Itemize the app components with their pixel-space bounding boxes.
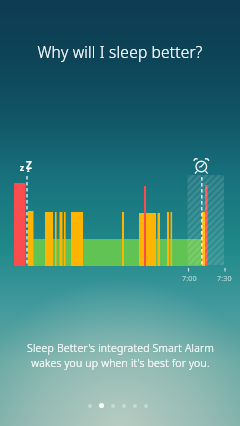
button[interactable] bbox=[88, 403, 148, 408]
staticText: 7:00 bbox=[182, 273, 197, 283]
staticText: 7:30 bbox=[217, 273, 232, 283]
staticText: z bbox=[20, 162, 24, 173]
staticText: z bbox=[27, 167, 30, 174]
staticText: Z bbox=[26, 158, 32, 172]
staticText: Why will I sleep better? bbox=[0, 41, 240, 62]
staticText: wakes you up when it's best for you. bbox=[31, 356, 210, 370]
staticText: Sleep Better's integrated Smart Alarm bbox=[27, 341, 214, 355]
